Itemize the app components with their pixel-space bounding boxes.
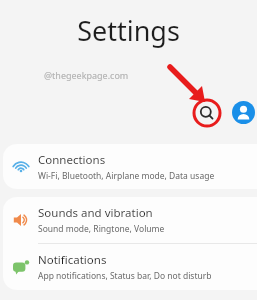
staticText: Wi-Fi, Bluetooth, Airplane mode, Data us… [38, 170, 215, 182]
button[interactable]: Connections [3, 144, 257, 189]
staticText: Sound mode, Ringtone, Volume [38, 223, 165, 235]
button[interactable]: Sounds and vibration [3, 197, 257, 243]
staticText: Sounds and vibration [38, 205, 153, 221]
staticText: Settings [0, 12, 257, 49]
button[interactable]: Notifications [3, 244, 257, 290]
staticText: App notifications, Status bar, Do not di… [38, 270, 212, 282]
staticText: @thegeekpage.com [44, 69, 129, 81]
button[interactable]: Account [232, 101, 255, 124]
button[interactable]: Search [192, 98, 222, 128]
staticText: Connections [38, 152, 106, 168]
staticText: Notifications [38, 252, 107, 268]
